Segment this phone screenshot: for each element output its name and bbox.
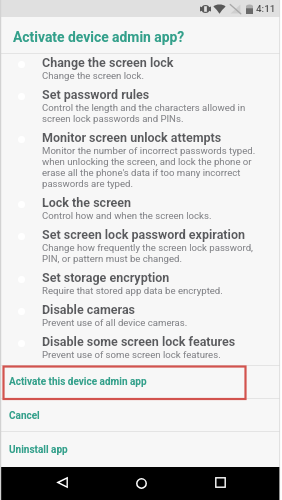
staticText: Control the length and the characters al…: [42, 102, 260, 124]
staticText: Set screen lock password expiration: [42, 227, 245, 242]
staticText: Monitor the number of incorrect password…: [42, 145, 260, 189]
staticText: Cancel: [9, 410, 40, 422]
staticText: Change how frequently the screen lock pa…: [42, 242, 260, 264]
button[interactable]: Cancel: [0, 399, 282, 431]
button[interactable]: Uninstall app: [0, 432, 282, 467]
button[interactable]: Back: [46, 467, 78, 500]
staticText: Disable cameras: [42, 302, 136, 317]
staticText: Prevent use of some screen lock features…: [42, 349, 221, 360]
staticText: Disable some screen lock features: [42, 334, 236, 349]
staticText: Require that stored app data be encrypte…: [42, 285, 223, 296]
staticText: Monitor screen unlock attempts: [42, 130, 222, 145]
staticText: Activate this device admin app: [9, 376, 147, 388]
staticText: Change the screen lock: [42, 55, 174, 70]
staticText: Uninstall app: [9, 444, 68, 456]
button[interactable]: Activate this device admin app: [0, 366, 282, 398]
staticText: 4:11: [256, 3, 276, 14]
staticText: Change the screen lock.: [42, 70, 144, 81]
staticText: Control how and when the screen locks.: [42, 210, 212, 221]
staticText: Activate device admin app?: [13, 29, 185, 45]
staticText: Prevent use of all device cameras.: [42, 317, 188, 328]
staticText: Set storage encryption: [42, 270, 170, 285]
button[interactable]: Recent apps: [204, 467, 236, 500]
button[interactable]: Home: [125, 468, 157, 500]
staticText: Lock the screen: [42, 195, 132, 210]
staticText: Set password rules: [42, 87, 150, 102]
